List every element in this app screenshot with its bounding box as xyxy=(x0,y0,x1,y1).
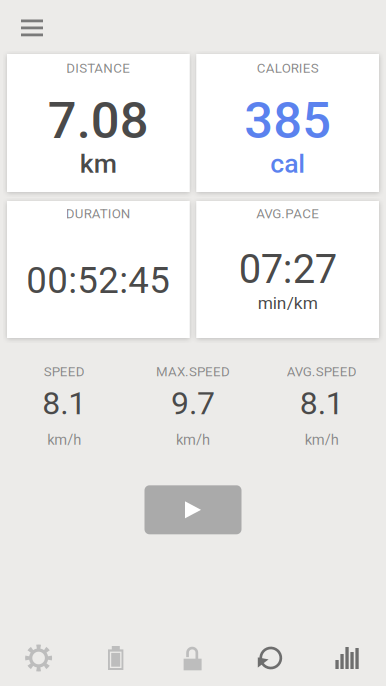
staticText: 9.7 xyxy=(171,385,215,422)
staticText: DURATION xyxy=(66,206,131,222)
button[interactable]: Settings xyxy=(0,644,77,671)
staticText: AVG.SPEED xyxy=(287,364,357,380)
button[interactable]: Menu xyxy=(0,8,57,45)
staticText: km/h xyxy=(47,431,81,448)
staticText: 7.08 xyxy=(48,91,149,150)
staticText: DISTANCE xyxy=(66,60,130,76)
staticText: km/h xyxy=(176,431,210,448)
button[interactable]: Lock xyxy=(154,645,232,670)
staticText: min/km xyxy=(258,293,318,313)
staticText: CALORIES xyxy=(257,60,319,76)
button[interactable]: Start xyxy=(144,485,241,534)
button[interactable]: Statistics xyxy=(309,647,386,669)
staticText: 00:52:45 xyxy=(26,259,170,302)
staticText: MAX.SPEED xyxy=(156,364,230,380)
staticText: 8.1 xyxy=(300,385,344,422)
button[interactable]: Battery xyxy=(77,646,154,670)
staticText: 385 xyxy=(244,91,331,150)
staticText: km/h xyxy=(305,431,339,448)
staticText: cal xyxy=(270,148,305,179)
button[interactable]: Reset xyxy=(232,645,309,671)
staticText: 07:27 xyxy=(239,246,337,293)
staticText: 8.1 xyxy=(42,385,86,422)
staticText: AVG.PACE xyxy=(256,206,319,222)
staticText: km xyxy=(80,148,117,179)
staticText: SPEED xyxy=(44,364,85,380)
